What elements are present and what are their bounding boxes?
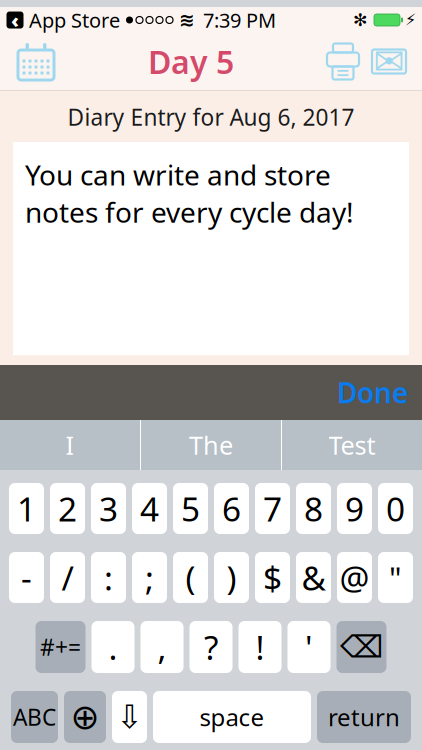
button[interactable]: ! [238, 621, 281, 673]
button[interactable]: Next keyboard [64, 691, 106, 743]
staticText: 5 [181, 486, 200, 531]
button[interactable]: 0 [378, 483, 413, 534]
staticText: Done [337, 374, 408, 411]
button[interactable]: , [140, 621, 183, 673]
staticText: ( [185, 555, 195, 600]
staticText: I [65, 428, 74, 462]
staticText: ) [226, 555, 236, 600]
staticText: ≋ [179, 9, 195, 31]
staticText: ✉ [373, 40, 404, 83]
button[interactable]: 7 [255, 483, 290, 534]
button[interactable]: 6 [214, 483, 249, 534]
button[interactable]: ' [287, 621, 330, 673]
staticText: App Store [24, 7, 120, 33]
staticText: ⊕ [70, 697, 99, 737]
staticText: 3 [99, 486, 118, 531]
staticText: 8 [304, 486, 323, 531]
staticText: : [104, 555, 113, 600]
staticText: Test [328, 428, 375, 462]
button[interactable]: return [317, 691, 411, 743]
button[interactable]: ; [132, 552, 167, 603]
button[interactable]: $ [255, 552, 290, 603]
staticText: ✻ [353, 10, 368, 30]
button[interactable]: 2 [50, 483, 85, 534]
staticText: 1 [17, 486, 36, 531]
staticText: ‹ [11, 7, 19, 33]
staticText: space [199, 701, 264, 733]
button[interactable]: - [9, 552, 44, 603]
button[interactable]: 8 [296, 483, 331, 534]
button[interactable]: Dictation [112, 691, 147, 743]
staticText: ' [305, 625, 313, 669]
staticText: 0 [386, 486, 405, 531]
staticText: 9 [345, 486, 364, 531]
staticText: / [61, 555, 73, 600]
staticText: You can write and store notes for every … [25, 156, 354, 230]
button[interactable]: 9 [337, 483, 372, 534]
staticText: $ [263, 555, 282, 600]
staticText: . [108, 625, 117, 669]
staticText: @ [339, 555, 369, 600]
staticText: 7:39 PM [203, 7, 276, 33]
staticText: return [328, 701, 400, 733]
button[interactable]: space [153, 691, 311, 743]
button[interactable]: The [141, 420, 281, 470]
button[interactable]: I [0, 420, 140, 470]
staticText: & [301, 555, 325, 600]
staticText: ABC [13, 702, 56, 732]
staticText: ⌫ [340, 630, 383, 664]
button[interactable]: / [50, 552, 85, 603]
button[interactable]: Calendar [10, 41, 62, 81]
staticText: 4 [140, 486, 159, 531]
button[interactable]: Test [282, 420, 422, 470]
staticText: 7 [263, 486, 282, 531]
button[interactable]: Done [323, 366, 422, 419]
button[interactable]: & [296, 552, 331, 603]
button[interactable]: 5 [173, 483, 208, 534]
staticText: Diary Entry for Aug 6, 2017 [67, 102, 354, 132]
button[interactable]: ABC [11, 691, 58, 743]
staticText: ; [145, 555, 154, 600]
button[interactable]: " [378, 552, 413, 603]
staticText: ⇩ [116, 699, 143, 735]
button[interactable]: Delete [336, 621, 386, 673]
staticText: 6 [222, 486, 241, 531]
staticText: Day 5 [148, 40, 234, 83]
staticText: " [389, 557, 402, 598]
button[interactable]: 3 [91, 483, 126, 534]
staticText: , [157, 625, 166, 669]
button[interactable]: Email [366, 42, 412, 80]
button[interactable]: 1 [9, 483, 44, 534]
button[interactable]: ) [214, 552, 249, 603]
staticText: ⚡︎ [405, 11, 416, 29]
button[interactable]: . [91, 621, 134, 673]
staticText: 2 [58, 486, 77, 531]
button[interactable]: ( [173, 552, 208, 603]
button[interactable]: #+= [35, 621, 85, 673]
button[interactable]: @ [337, 552, 372, 603]
button[interactable]: Print [320, 42, 366, 80]
staticText: - [21, 555, 32, 600]
button[interactable]: : [91, 552, 126, 603]
staticText: ? [204, 625, 218, 669]
staticText: #+= [40, 632, 81, 662]
button[interactable]: ? [189, 621, 232, 673]
staticText: ! [255, 625, 264, 669]
button[interactable]: 4 [132, 483, 167, 534]
staticText: The [189, 428, 233, 462]
